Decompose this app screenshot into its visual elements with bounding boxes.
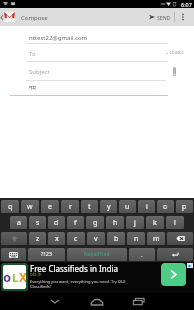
button[interactable]: i (138, 200, 155, 213)
staticText: Subject (29, 68, 50, 76)
button[interactable]: ?123 (28, 248, 65, 261)
button[interactable]: b (107, 232, 125, 245)
button[interactable]: a (10, 216, 27, 229)
staticText: b (114, 234, 119, 244)
staticText: L (12, 270, 19, 285)
staticText: Everything you want, everything you need… (30, 279, 126, 284)
button[interactable]: h (106, 216, 124, 229)
staticText: o (163, 202, 168, 212)
staticText: q (8, 202, 13, 212)
staticText: d (54, 218, 59, 228)
staticText: v (94, 234, 98, 244)
staticText: Free Classifieds in India (30, 263, 119, 274)
button[interactable]: g (86, 216, 104, 229)
staticText: l (174, 218, 176, 228)
button[interactable]: w (21, 200, 39, 213)
button[interactable]: c (67, 232, 85, 245)
button[interactable]: Recent apps (129, 293, 149, 310)
staticText: . (141, 251, 143, 259)
staticText: k (153, 218, 157, 228)
button[interactable]: k (146, 216, 164, 229)
staticText: olx.in (30, 271, 42, 277)
button[interactable]: Attach file (169, 64, 179, 78)
button[interactable]: j (126, 216, 144, 229)
button[interactable]: Shift (1, 232, 27, 245)
button[interactable]: e (41, 200, 59, 213)
button[interactable]: d (48, 216, 65, 229)
staticText: a (17, 218, 21, 228)
button[interactable]: x (48, 232, 65, 245)
staticText: o (3, 268, 12, 286)
button[interactable]: Delete (167, 232, 193, 245)
staticText: n (134, 234, 139, 244)
staticText: NepaliTrad (84, 251, 110, 258)
staticText: x (55, 234, 59, 244)
button[interactable]: Open advertisement (161, 263, 186, 286)
staticText: Compose (21, 14, 48, 22)
button[interactable]: SEND (149, 8, 173, 26)
button[interactable]: q (1, 200, 19, 213)
button[interactable]: Enter (157, 248, 193, 261)
button[interactable]: u (119, 200, 136, 213)
button[interactable]: y (100, 200, 117, 213)
staticText: p (182, 202, 187, 212)
button[interactable]: v (87, 232, 105, 245)
button[interactable]: t (81, 200, 98, 213)
staticText: To (29, 50, 36, 58)
button[interactable]: Space (67, 248, 127, 261)
button[interactable]: o (0, 262, 194, 293)
staticText: h (113, 218, 118, 228)
staticText: j (134, 218, 136, 228)
staticText: y (107, 202, 111, 212)
staticText: ?123 (41, 251, 52, 258)
button[interactable]: Navigate up (0, 8, 4, 26)
staticText: e (48, 202, 52, 212)
staticText: X (19, 269, 26, 285)
button[interactable]: Change keyboard (1, 248, 26, 261)
staticText: 6:07 (181, 1, 192, 8)
button[interactable]: More options (177, 8, 189, 26)
staticText: u (125, 202, 130, 212)
button[interactable]: s (29, 216, 46, 229)
staticText: + CC/BCC (166, 50, 185, 56)
staticText: नम (29, 84, 36, 92)
staticText: w (27, 202, 33, 212)
button[interactable]: r (61, 200, 79, 213)
button[interactable]: f (67, 216, 84, 229)
button[interactable]: m (147, 232, 165, 245)
staticText: m (153, 234, 160, 244)
button[interactable]: . (129, 248, 155, 261)
staticText: g (93, 218, 98, 228)
staticText: f (74, 218, 77, 228)
button[interactable]: z (29, 232, 46, 245)
button[interactable]: Back (45, 293, 65, 310)
staticText: Classifieds! (30, 284, 51, 289)
staticText: s (36, 218, 40, 228)
button[interactable]: n (127, 232, 145, 245)
button[interactable]: p (176, 200, 193, 213)
staticText: i (146, 202, 148, 212)
button[interactable]: l (166, 216, 184, 229)
button[interactable]: o (157, 200, 174, 213)
staticText: nttest22@gmail.com (29, 34, 88, 42)
staticText: SEND (157, 14, 171, 21)
staticText: t (88, 202, 91, 212)
button[interactable]: + CC/BCC (166, 48, 190, 57)
staticText: r (69, 202, 72, 212)
button[interactable]: Home (87, 293, 107, 310)
staticText: z (36, 234, 40, 244)
staticText: c (74, 234, 78, 244)
